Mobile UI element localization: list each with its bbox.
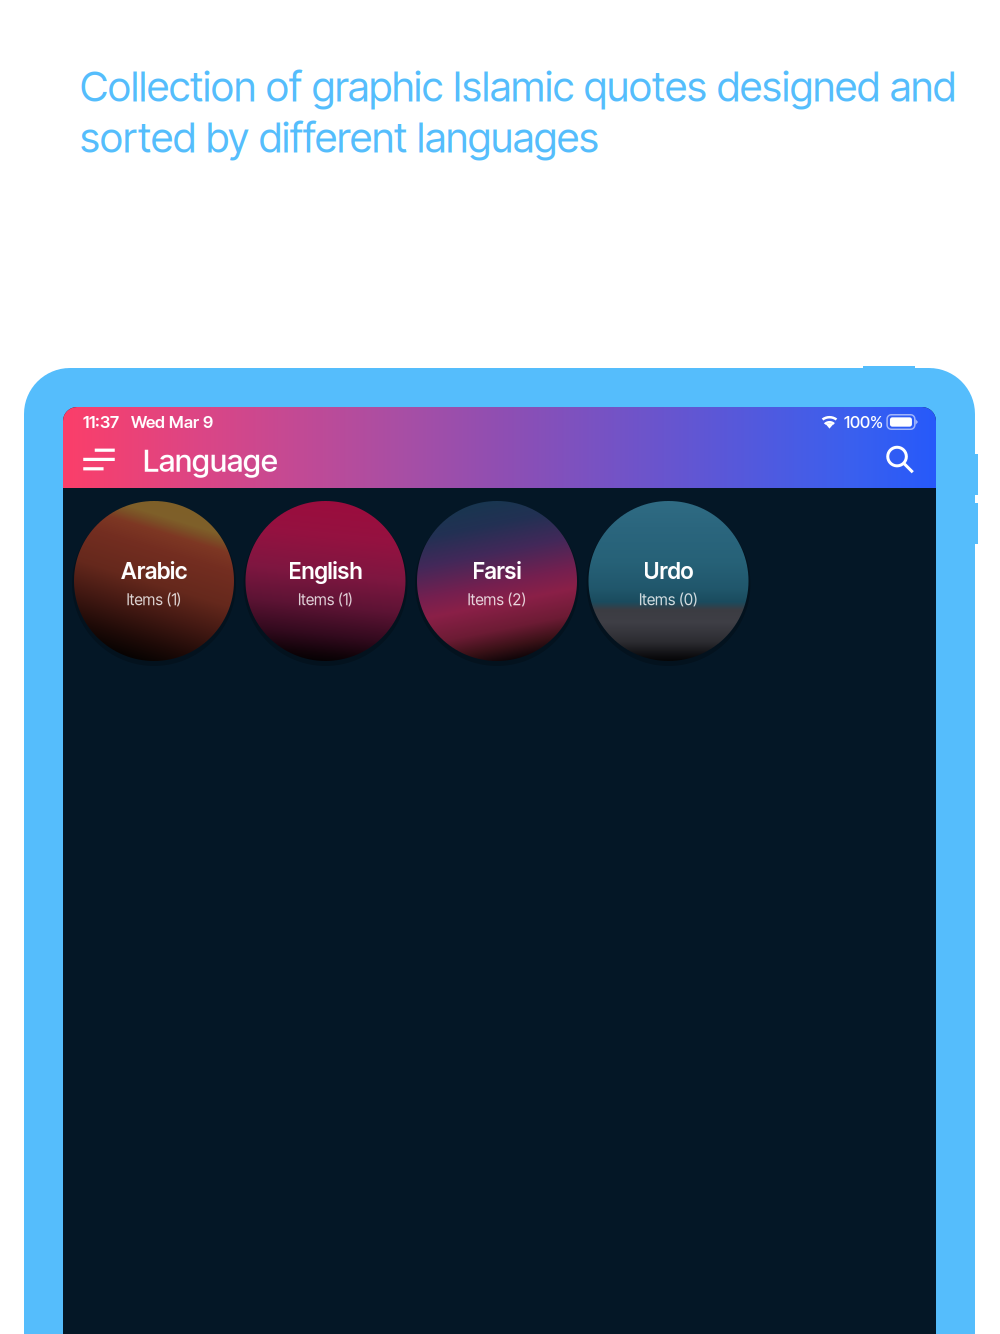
staticText: Arabic	[121, 557, 187, 584]
staticText: Items (1)	[126, 590, 181, 609]
staticText: Urdo	[643, 557, 693, 584]
staticText: Collection of graphic Islamic quotes des…	[80, 62, 956, 111]
button[interactable]: Search	[875, 434, 925, 484]
staticText: Farsi	[472, 557, 521, 584]
button[interactable]: English	[245, 501, 405, 661]
staticText: Language	[143, 442, 278, 479]
button[interactable]: Farsi	[417, 501, 577, 661]
button[interactable]: Arabic	[74, 501, 234, 661]
staticText: sorted by different languages	[80, 113, 599, 162]
staticText: Items (1)	[298, 590, 353, 609]
staticText: Items (0)	[639, 590, 698, 609]
staticText: English	[288, 557, 362, 584]
staticText: Wed Mar 9	[131, 412, 213, 432]
staticText: 100%	[844, 412, 883, 432]
staticText: Items (2)	[467, 590, 526, 609]
button[interactable]: Menu	[74, 434, 124, 484]
button[interactable]: Urdo	[588, 501, 748, 661]
staticText: 11:37	[83, 412, 119, 432]
